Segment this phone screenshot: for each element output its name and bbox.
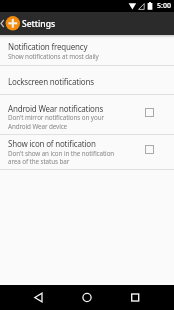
staticText: Settings [22,18,56,30]
staticText: 5:00 [157,1,171,11]
button[interactable] [58,285,116,310]
staticText: Show notifications at most daily [8,52,99,61]
button[interactable]: Notification frequency [0,35,174,65]
staticText: Show icon of notification [8,138,96,149]
button[interactable] [0,285,58,310]
staticText: Don't show an icon in the notification [8,149,115,158]
staticText: Notification frequency [8,41,88,52]
button[interactable]: Android Wear notifications [0,95,174,134]
staticText: area of the status bar [8,157,70,166]
staticText: Android Wear notifications [8,103,104,114]
staticText: Android Wear device [8,122,68,131]
button[interactable]: Show icon of notification [0,135,174,169]
button[interactable]: Lockscreen notifications [0,66,174,94]
staticText: Lockscreen notifications [8,76,94,87]
staticText: Don't mirror notifications on your [8,113,104,122]
button[interactable] [116,285,174,310]
